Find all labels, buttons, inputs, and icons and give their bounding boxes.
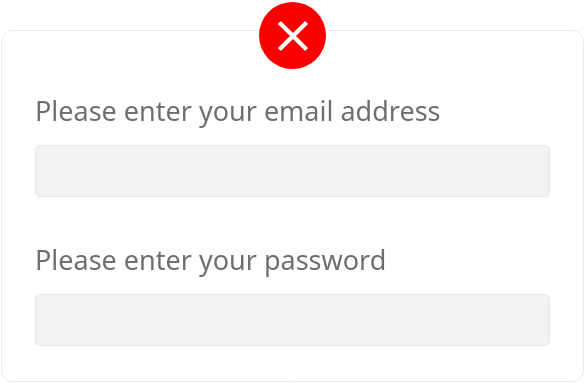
staticText: Please enter your email address	[35, 92, 441, 129]
button[interactable]: Close	[259, 2, 326, 69]
staticText: Please enter your password	[35, 241, 387, 278]
